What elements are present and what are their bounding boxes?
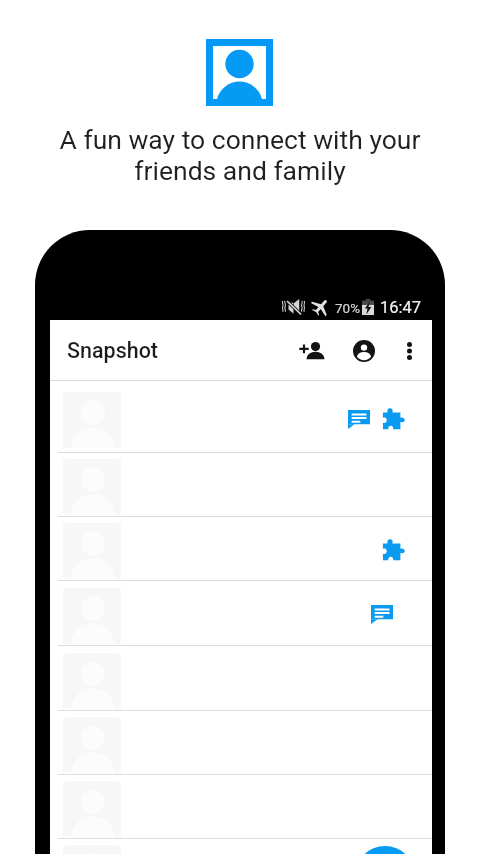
button[interactable]: Account: [341, 328, 386, 373]
button[interactable]: More options: [387, 328, 431, 373]
button[interactable]: [50, 838, 432, 854]
staticText: Snapshot: [67, 338, 159, 363]
button[interactable]: [50, 774, 432, 839]
button[interactable]: [50, 645, 432, 711]
button[interactable]: Compose: [355, 846, 415, 854]
button[interactable]: [50, 516, 432, 581]
staticText: A fun way to connect with your friends a…: [50, 124, 430, 186]
staticText: 70%: [335, 300, 361, 316]
staticText: 16:47: [380, 298, 422, 317]
button[interactable]: [50, 381, 432, 453]
button[interactable]: [50, 580, 432, 646]
button[interactable]: [50, 710, 432, 775]
button[interactable]: [50, 452, 432, 517]
button[interactable]: Add person: [287, 330, 337, 372]
